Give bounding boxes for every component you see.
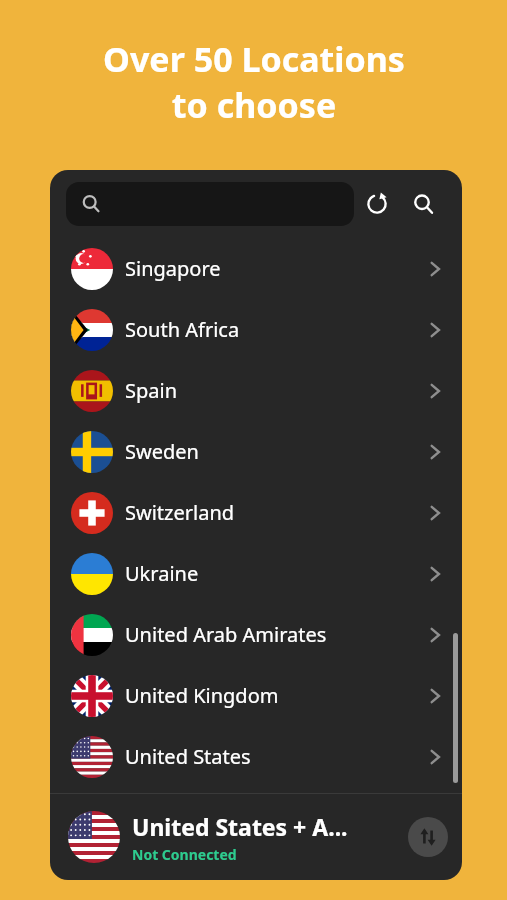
button[interactable]: Ukraine bbox=[50, 543, 462, 604]
staticText: Sweden bbox=[125, 438, 424, 465]
button[interactable]: United States + A... bbox=[50, 794, 462, 880]
staticText: Spain bbox=[125, 377, 424, 404]
staticText: United States + A... bbox=[132, 811, 348, 842]
staticText: Switzerland bbox=[125, 499, 424, 526]
button[interactable]: United Arab Amirates bbox=[50, 604, 462, 665]
button[interactable]: South Africa bbox=[50, 299, 462, 360]
button[interactable]: Switzerland bbox=[50, 482, 462, 543]
button[interactable]: Search field bbox=[66, 182, 354, 226]
button[interactable]: United Kingdom bbox=[50, 665, 462, 726]
staticText: Over 50 Locations to choose bbox=[103, 36, 405, 128]
staticText: Ukraine bbox=[125, 560, 424, 587]
button[interactable]: Refresh bbox=[354, 182, 400, 226]
staticText: South Africa bbox=[125, 316, 424, 343]
button[interactable]: Singapore bbox=[50, 238, 462, 299]
button[interactable]: United States bbox=[50, 726, 462, 787]
button[interactable]: Spain bbox=[50, 360, 462, 421]
staticText: United Arab Amirates bbox=[125, 621, 424, 648]
staticText: Singapore bbox=[125, 255, 424, 282]
button[interactable]: Sweden bbox=[50, 421, 462, 482]
staticText: United States bbox=[125, 743, 424, 770]
staticText: Not Connected bbox=[132, 845, 237, 864]
button[interactable]: Toggle connection bbox=[408, 817, 448, 857]
staticText: United Kingdom bbox=[125, 682, 424, 709]
button[interactable]: Search bbox=[400, 182, 446, 226]
